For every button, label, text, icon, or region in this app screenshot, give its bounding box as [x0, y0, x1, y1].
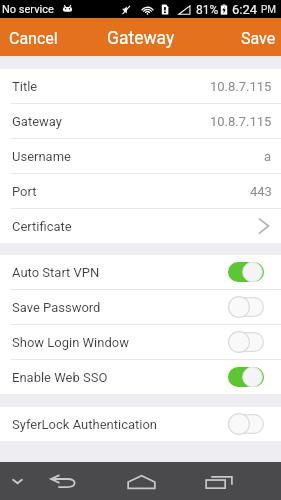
- staticText: Gateway: [107, 28, 175, 49]
- button[interactable]: Home: [122, 462, 160, 500]
- staticText: 81%: [196, 3, 219, 17]
- staticText: 443: [250, 184, 272, 199]
- staticText: Cancel: [9, 29, 58, 48]
- button[interactable]: Certificate: [0, 209, 281, 243]
- staticText: Save: [241, 29, 276, 48]
- button[interactable]: Port: [0, 174, 281, 208]
- staticText: a: [264, 149, 272, 164]
- button[interactable]: Save: [232, 18, 281, 56]
- staticText: PM: [261, 4, 277, 16]
- button[interactable]: Gateway: [0, 104, 281, 138]
- staticText: Username: [12, 149, 71, 164]
- staticText: Enable Web SSO: [12, 370, 108, 385]
- button[interactable]: Recents: [200, 462, 238, 500]
- staticText: Title: [12, 79, 38, 94]
- staticText: Show Login Window: [12, 335, 129, 350]
- button[interactable]: Show Login Window: [0, 325, 281, 359]
- staticText: 10.8.7.115: [210, 79, 272, 94]
- staticText: Auto Start VPN: [12, 265, 100, 280]
- button[interactable]: Title: [0, 69, 281, 103]
- button[interactable]: Back: [44, 462, 82, 500]
- button[interactable]: Username: [0, 139, 281, 173]
- staticText: Certificate: [12, 219, 72, 234]
- button[interactable]: Hide keyboard: [0, 462, 34, 500]
- staticText: 10.8.7.115: [210, 114, 272, 129]
- staticText: SyferLock Authentication: [12, 417, 158, 432]
- button[interactable]: Enable Web SSO: [0, 360, 281, 394]
- staticText: 6:24: [232, 2, 258, 17]
- button[interactable]: Save Password: [0, 290, 281, 324]
- staticText: No service: [2, 3, 54, 16]
- staticText: Gateway: [12, 114, 62, 129]
- button[interactable]: Auto Start VPN: [0, 255, 281, 289]
- staticText: Port: [12, 184, 37, 199]
- button[interactable]: SyferLock Authentication: [0, 407, 281, 441]
- staticText: Save Password: [12, 300, 101, 315]
- button[interactable]: Cancel: [0, 18, 67, 56]
